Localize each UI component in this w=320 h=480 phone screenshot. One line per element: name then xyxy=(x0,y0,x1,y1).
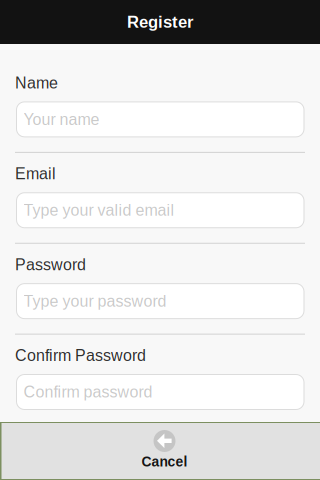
staticText: Name xyxy=(15,74,58,92)
button[interactable]: Cancel xyxy=(0,422,320,469)
staticText: Type your valid email xyxy=(23,201,174,219)
staticText: Type your password xyxy=(23,292,166,310)
button[interactable]: Confirm password xyxy=(16,374,304,409)
staticText: Confirm password xyxy=(23,383,152,401)
staticText: Your name xyxy=(23,110,99,128)
staticText: Register xyxy=(127,13,193,31)
staticText: Email xyxy=(15,165,56,183)
staticText: Cancel xyxy=(141,454,187,469)
button[interactable]: Your name xyxy=(16,102,304,137)
button[interactable]: Type your valid email xyxy=(16,193,304,228)
staticText: Password xyxy=(15,256,86,274)
staticText: Confirm Password xyxy=(15,347,146,364)
button[interactable]: Type your password xyxy=(16,284,304,319)
